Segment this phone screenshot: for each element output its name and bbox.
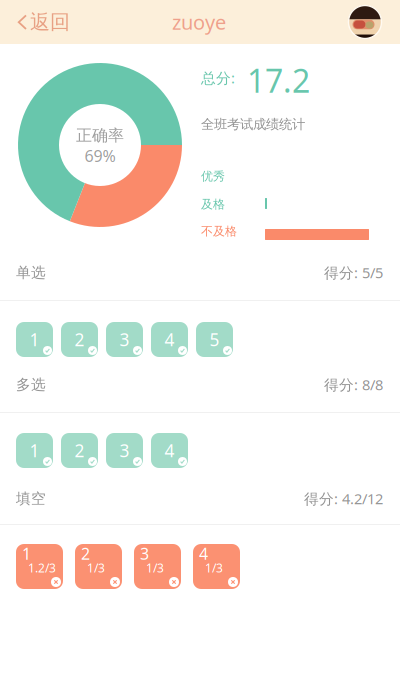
- staticText: 不及格: [201, 224, 237, 239]
- staticText: zuoye: [172, 9, 226, 35]
- staticText: 3: [140, 543, 149, 564]
- staticText: 4: [164, 439, 174, 462]
- staticText: 总分:: [201, 68, 235, 87]
- staticText: 2: [81, 543, 90, 564]
- staticText: 正确率: [76, 125, 124, 145]
- button[interactable]: 2: [61, 322, 98, 357]
- staticText: 69%: [84, 145, 115, 166]
- button[interactable]: 返回: [0, 0, 86, 44]
- button[interactable]: 1: [16, 322, 53, 357]
- button[interactable]: 4: [151, 322, 188, 357]
- staticText: 2: [74, 328, 84, 351]
- staticText: 2: [74, 439, 84, 462]
- button[interactable]: 1: [16, 544, 63, 589]
- staticText: 全班考试成绩统计: [201, 116, 305, 132]
- button[interactable]: 3: [106, 433, 143, 468]
- staticText: 填空: [16, 489, 46, 507]
- button[interactable]: 3: [106, 322, 143, 357]
- staticText: 返回: [30, 10, 70, 34]
- staticText: 及格: [201, 197, 225, 212]
- staticText: 17.2: [247, 59, 310, 101]
- button[interactable]: zuoye: [149, 0, 249, 44]
- staticText: 得分: 5/5: [324, 263, 383, 282]
- button[interactable]: 4: [151, 433, 188, 468]
- staticText: 得分: 4.2/12: [304, 489, 383, 508]
- staticText: 3: [119, 439, 129, 462]
- button[interactable]: 5: [196, 322, 233, 357]
- staticText: 单选: [16, 263, 46, 281]
- button[interactable]: 1: [16, 433, 53, 468]
- staticText: 1: [29, 439, 39, 462]
- staticText: 4: [199, 543, 208, 564]
- button[interactable]: 2: [75, 544, 122, 589]
- staticText: 4: [164, 328, 174, 351]
- staticText: 1/3: [205, 560, 223, 576]
- staticText: 1.2/3: [28, 560, 56, 576]
- staticText: 3: [119, 328, 129, 351]
- staticText: 5: [209, 328, 219, 351]
- staticText: 1/3: [146, 560, 164, 576]
- staticText: 1/3: [87, 560, 105, 576]
- staticText: 多选: [16, 375, 46, 393]
- button[interactable]: 4: [193, 544, 240, 589]
- staticText: 1: [29, 328, 39, 351]
- button[interactable]: Profile: [343, 0, 387, 44]
- button[interactable]: 3: [134, 544, 181, 589]
- staticText: 得分: 8/8: [324, 375, 383, 394]
- button[interactable]: 2: [61, 433, 98, 468]
- staticText: 1: [22, 543, 31, 564]
- staticText: 优秀: [201, 169, 225, 184]
